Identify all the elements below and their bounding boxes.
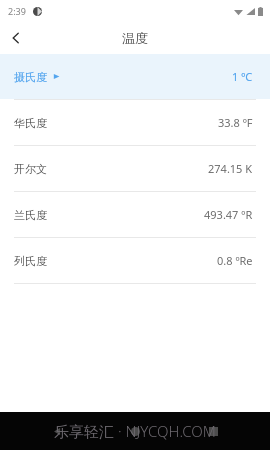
- button[interactable]: Recents: [200, 418, 226, 444]
- staticText: 493.47 ºR: [204, 207, 253, 222]
- button[interactable]: 摄氏度: [0, 54, 270, 99]
- button[interactable]: Back: [0, 22, 32, 54]
- staticText: 华氏度: [14, 116, 47, 130]
- staticText: 兰氏度: [14, 208, 47, 222]
- staticText: 0.8 ºRe: [217, 253, 253, 268]
- staticText: 乐享轻汇 · NJYCQH.COM: [54, 421, 216, 441]
- button[interactable]: Back: [44, 418, 70, 444]
- button[interactable]: 开尔文: [0, 146, 270, 191]
- button[interactable]: 华氏度: [0, 100, 270, 145]
- staticText: 温度: [122, 30, 148, 46]
- button[interactable]: Home: [122, 418, 148, 444]
- staticText: 2:39: [8, 5, 26, 17]
- staticText: 1 ºC: [232, 69, 253, 84]
- button[interactable]: 兰氏度: [0, 192, 270, 237]
- button[interactable]: 列氏度: [0, 238, 270, 283]
- staticText: 33.8 ºF: [218, 115, 253, 130]
- staticText: 列氏度: [14, 254, 47, 268]
- staticText: 274.15 K: [208, 161, 253, 176]
- staticText: 开尔文: [14, 162, 47, 176]
- staticText: 摄氏度: [14, 70, 47, 84]
